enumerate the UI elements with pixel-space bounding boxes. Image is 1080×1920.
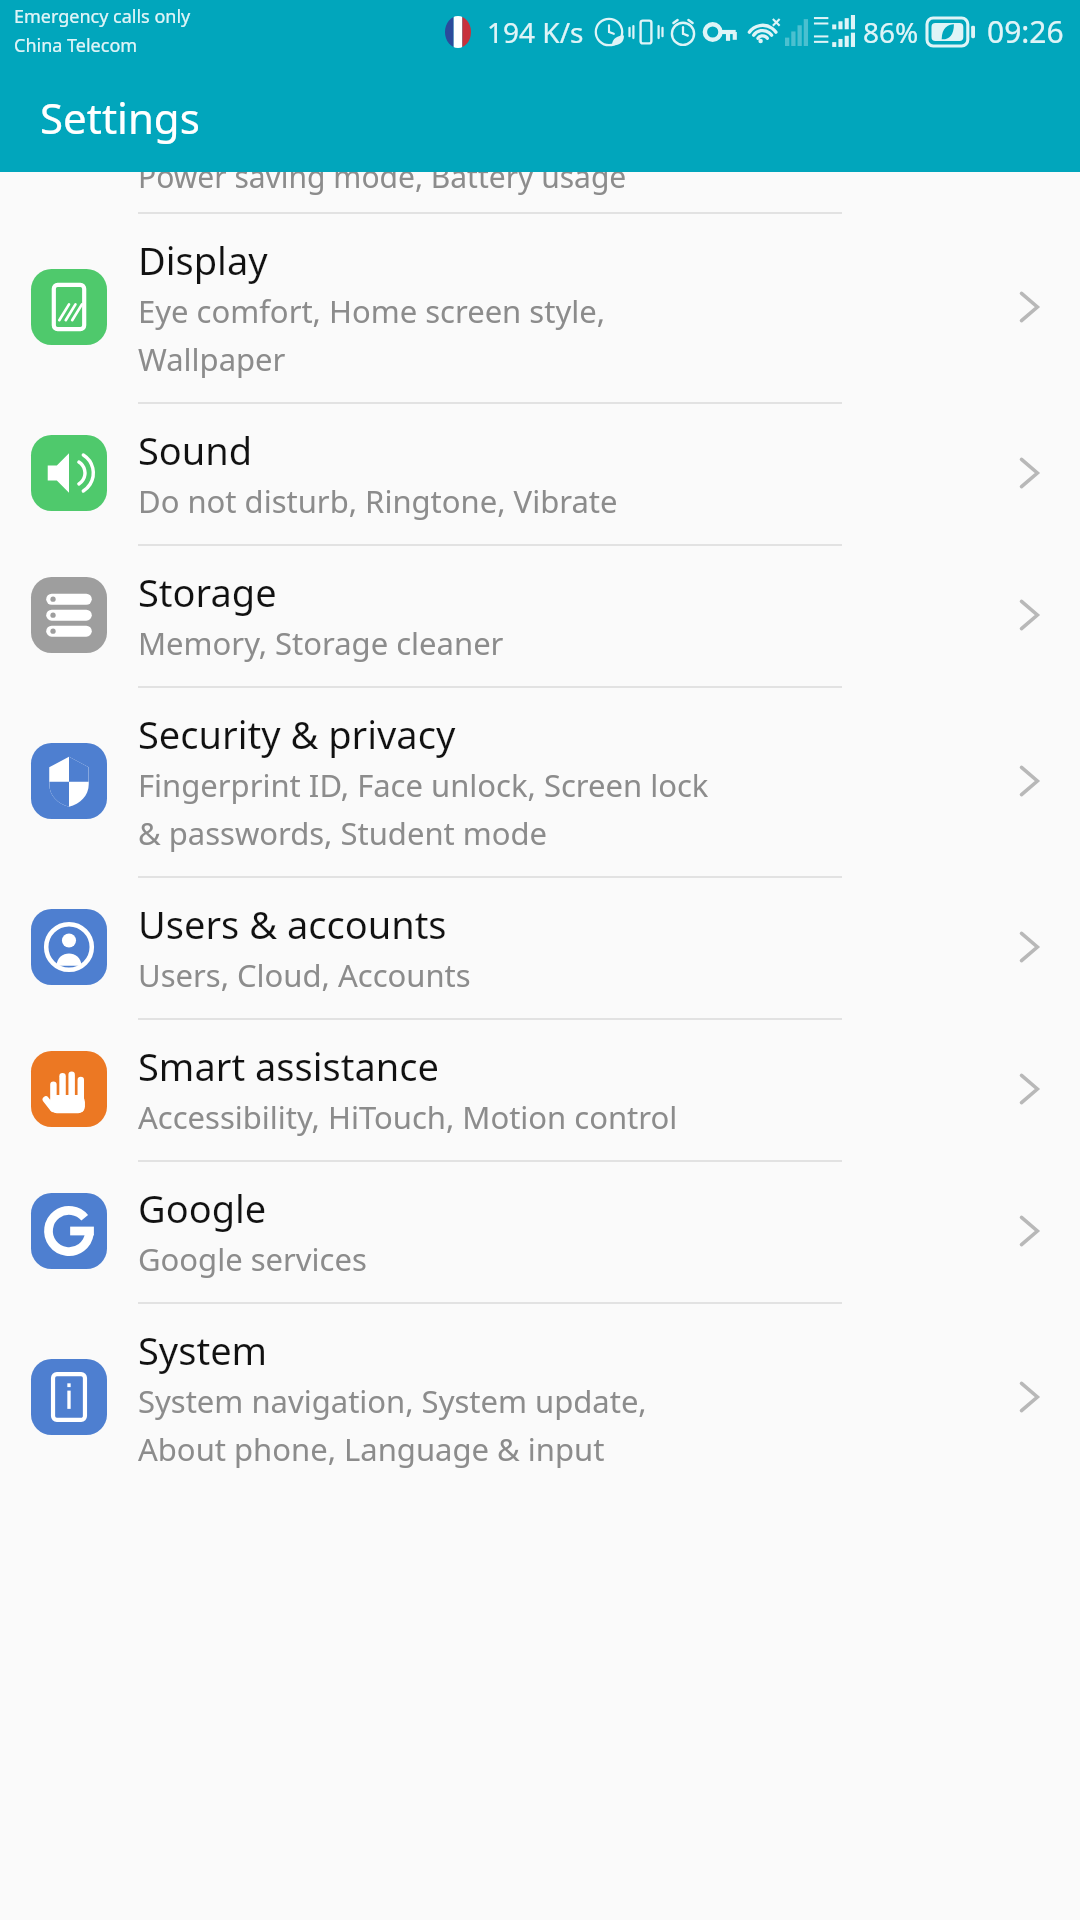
button[interactable]: Smart assistance [0,1020,1080,1160]
button[interactable]: Google [0,1162,1080,1302]
staticText: System [138,1324,268,1376]
button[interactable]: Security & privacy [0,688,1080,876]
staticText: Sound [138,424,253,476]
staticText: Users & accounts [138,898,447,950]
staticText: 86% [863,13,919,51]
other: Open System [976,1379,1080,1415]
staticText: Power saving mode, Battery usage [138,156,627,196]
button[interactable]: Display [0,214,1080,402]
staticText: Do not disturb, Ringtone, Vibrate [138,480,618,522]
staticText: China Telecom [14,33,138,58]
staticText: Smart assistance [138,1040,439,1092]
other: Open Display [976,289,1080,325]
button[interactable]: Users & accounts [0,878,1080,1018]
staticText: System navigation, System update, About … [138,1380,647,1470]
button[interactable]: Storage [0,546,1080,686]
other: Open Google [976,1213,1080,1249]
staticText: Memory, Storage cleaner [138,622,504,664]
other: Open Smart assistance [976,1071,1080,1107]
other: Open Sound [976,455,1080,491]
staticText: 194 K/s [487,13,584,51]
staticText: Eye comfort, Home screen style, Wallpape… [138,290,605,380]
staticText: Users, Cloud, Accounts [138,954,471,996]
staticText: Display [138,234,268,286]
other: Open Security & privacy [976,763,1080,799]
staticText: Emergency calls only [14,4,191,29]
staticText: 09:26 [987,11,1064,52]
button[interactable]: Power saving mode, Battery usage [0,172,1080,212]
other: Open Users & accounts [976,929,1080,965]
staticText: Accessibility, HiTouch, Motion control [138,1096,678,1138]
staticText: Storage [138,566,277,618]
button[interactable]: Sound [0,404,1080,544]
staticText: Google services [138,1238,367,1280]
staticText: Google [138,1182,267,1234]
staticText: Fingerprint ID, Face unlock, Screen lock… [138,764,709,854]
staticText: Settings [40,89,200,146]
other: Open Storage [976,597,1080,633]
button[interactable]: System [0,1304,1080,1492]
staticText: Security & privacy [138,708,456,760]
